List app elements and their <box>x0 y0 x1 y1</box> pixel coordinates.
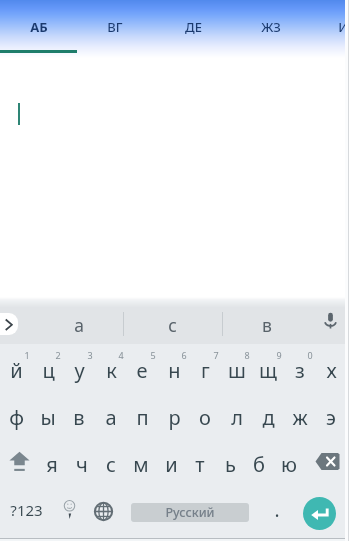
button[interactable]: к <box>95 344 127 391</box>
button[interactable]: е <box>126 344 158 391</box>
button[interactable]: АБ <box>0 0 77 50</box>
button[interactable]: щ <box>252 344 284 391</box>
staticText: 3 <box>87 349 93 361</box>
staticText: 4 <box>118 349 124 361</box>
button[interactable]: Shift <box>0 438 38 485</box>
staticText: б <box>253 451 265 478</box>
staticText: д <box>262 404 275 431</box>
button[interactable]: . <box>258 485 296 538</box>
staticText: с <box>168 313 177 337</box>
button[interactable]: п <box>126 391 158 438</box>
staticText: с <box>106 451 116 478</box>
button[interactable]: д <box>252 391 284 438</box>
staticText: и <box>165 451 178 478</box>
staticText: м <box>133 451 149 478</box>
button[interactable]: Backspace <box>306 438 349 485</box>
staticText: ч <box>76 451 88 478</box>
staticText: а <box>74 313 84 337</box>
staticText: я <box>46 451 58 478</box>
button[interactable]: ВГ <box>76 0 153 50</box>
button[interactable]: р <box>158 391 190 438</box>
staticText: г <box>201 357 210 384</box>
staticText: 9 <box>276 349 282 361</box>
button[interactable]: я <box>37 438 67 485</box>
staticText: ДЕ <box>185 18 202 36</box>
staticText: п <box>136 404 149 431</box>
button[interactable]: ы <box>32 391 64 438</box>
staticText: ж <box>292 404 308 431</box>
button[interactable]: ДЕ <box>155 0 232 50</box>
staticText: ф <box>9 404 24 431</box>
staticText: 2 <box>55 349 61 361</box>
button[interactable]: а <box>95 391 127 438</box>
button[interactable]: Voice input <box>313 297 347 344</box>
button[interactable]: й <box>0 344 32 391</box>
staticText: АБ <box>30 18 48 36</box>
staticText: ш <box>228 357 246 384</box>
staticText: у <box>74 357 85 384</box>
button[interactable]: ю <box>274 438 304 485</box>
staticText: л <box>231 404 243 431</box>
button[interactable]: More suggestions <box>0 313 18 335</box>
staticText: 6 <box>181 349 187 361</box>
button[interactable]: ф <box>0 391 32 438</box>
staticText: а <box>105 404 117 431</box>
staticText: 5 <box>150 349 156 361</box>
button[interactable]: Change language <box>86 488 120 535</box>
staticText: в <box>262 313 272 337</box>
button[interactable]: ш <box>221 344 253 391</box>
button[interactable]: с <box>123 297 221 344</box>
button[interactable]: ?123 <box>0 485 53 538</box>
button[interactable]: ь <box>215 438 245 485</box>
staticText: 0 <box>307 349 313 361</box>
staticText: 7 <box>213 349 219 361</box>
staticText: ю <box>281 451 297 478</box>
button[interactable]: в <box>218 297 311 344</box>
staticText: й <box>10 357 23 384</box>
staticText: 1 <box>24 349 30 361</box>
staticText: . <box>274 497 280 523</box>
button[interactable]: э <box>315 391 347 438</box>
staticText: к <box>106 357 117 384</box>
button[interactable]: х <box>315 344 347 391</box>
staticText: ы <box>40 404 56 431</box>
staticText: т <box>195 451 205 478</box>
button[interactable]: а <box>19 297 128 344</box>
staticText: э <box>326 404 336 431</box>
button[interactable]: м <box>126 438 156 485</box>
staticText: Русский <box>165 504 215 521</box>
button[interactable]: Enter <box>303 497 336 530</box>
staticText: р <box>168 404 181 431</box>
staticText: в <box>73 404 85 431</box>
button[interactable]: л <box>221 391 253 438</box>
staticText: ц <box>42 357 55 384</box>
button[interactable]: ч <box>67 438 97 485</box>
button[interactable]: ЖЗ <box>232 0 309 50</box>
button[interactable]: г <box>189 344 221 391</box>
staticText: о <box>199 404 211 431</box>
staticText: е <box>136 357 148 384</box>
button[interactable]: о <box>189 391 221 438</box>
staticText: з <box>295 357 305 384</box>
staticText: ВГ <box>107 18 123 36</box>
button[interactable]: ц <box>32 344 64 391</box>
button[interactable]: з <box>284 344 316 391</box>
staticText: ?123 <box>10 500 43 520</box>
staticText: н <box>168 357 181 384</box>
button[interactable]: ИК <box>309 0 349 50</box>
button[interactable]: с <box>96 438 126 485</box>
button[interactable]: в <box>63 391 95 438</box>
button[interactable]: ж <box>284 391 316 438</box>
button[interactable]: и <box>156 438 186 485</box>
staticText: х <box>326 357 337 384</box>
button[interactable]: н <box>158 344 190 391</box>
button[interactable]: у <box>63 344 95 391</box>
button[interactable]: т <box>185 438 215 485</box>
button[interactable]: б <box>244 438 274 485</box>
staticText: ИК <box>338 18 349 36</box>
button[interactable]: Русский <box>131 503 249 522</box>
staticText: щ <box>259 357 277 384</box>
staticText: ЖЗ <box>261 18 281 36</box>
button[interactable]: Emoji <box>53 488 85 535</box>
staticText: 8 <box>244 349 250 361</box>
